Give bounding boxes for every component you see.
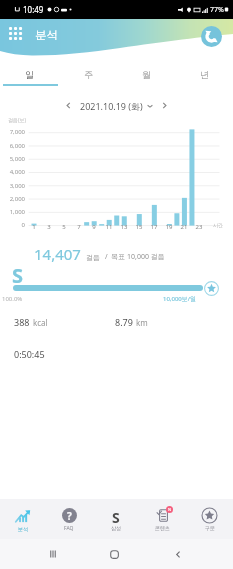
staticText: 걸음 xyxy=(86,253,100,262)
button[interactable]: 월 xyxy=(117,62,175,86)
staticText: km xyxy=(136,317,148,328)
staticText: 년 xyxy=(200,69,209,80)
button[interactable]: 일 xyxy=(0,62,59,86)
button[interactable]: Recents xyxy=(43,547,63,561)
staticText: 구문 xyxy=(205,525,215,531)
staticText: 21 xyxy=(176,223,192,231)
staticText: 4,000 xyxy=(0,168,25,176)
staticText: 주 xyxy=(84,69,93,80)
button[interactable]: Goal badge xyxy=(204,281,219,296)
button[interactable]: Apps xyxy=(6,24,28,46)
staticText: 0:50:45 xyxy=(14,348,45,360)
staticText: 0 xyxy=(0,221,25,229)
staticText: 8.79 xyxy=(115,316,133,328)
staticText: 5 xyxy=(56,223,72,231)
staticText: 10,000보/일 xyxy=(163,295,197,303)
staticText: 걸음(보) xyxy=(8,117,27,124)
staticText: 1 xyxy=(26,223,42,231)
button[interactable]: Call xyxy=(201,26,222,47)
staticText: 시간 xyxy=(213,222,223,228)
staticText: 7,000 xyxy=(0,128,25,136)
staticText: 분석 xyxy=(18,526,28,532)
staticText: FAQ xyxy=(64,525,74,532)
staticText: 삼성 xyxy=(111,525,121,531)
staticText: 100.0% xyxy=(2,295,23,303)
staticText: 2021.10.19 (화) xyxy=(80,100,143,112)
button[interactable]: 분석 xyxy=(0,499,46,539)
staticText: 6,000 xyxy=(0,142,25,150)
button[interactable]: Previous day xyxy=(60,97,77,114)
button[interactable]: 2021.10.19 (화) xyxy=(80,100,153,112)
staticText: 14,407 xyxy=(34,244,81,264)
button[interactable]: 년 xyxy=(175,62,233,86)
staticText: ? xyxy=(67,509,72,523)
staticText: 15 xyxy=(131,223,147,231)
button[interactable]: Back xyxy=(168,547,188,561)
staticText: 5,000 xyxy=(0,155,25,163)
staticText: / 목표 10,000 걸음 xyxy=(105,252,165,262)
staticText: 77% xyxy=(210,5,224,15)
staticText: 3,000 xyxy=(0,182,25,190)
staticText: 일 xyxy=(25,69,34,80)
button[interactable]: 구문 xyxy=(186,499,233,539)
staticText: 3 xyxy=(41,223,57,231)
staticText: 388 xyxy=(14,316,30,328)
staticText: N xyxy=(168,507,172,512)
button[interactable]: Next day xyxy=(156,97,173,114)
staticText: 월 xyxy=(142,69,151,80)
staticText: 7 xyxy=(71,223,87,231)
button[interactable]: S xyxy=(92,499,139,539)
staticText: 17 xyxy=(146,223,162,231)
staticText: kcal xyxy=(33,317,48,328)
button[interactable] xyxy=(13,285,203,291)
staticText: 23 xyxy=(191,223,207,231)
button[interactable]: Home xyxy=(104,547,124,561)
staticText: 10:49 xyxy=(23,4,44,15)
staticText: 분석 xyxy=(35,28,58,42)
staticText: 13 xyxy=(116,223,132,231)
staticText: 19 xyxy=(161,223,177,231)
staticText: 콘텐츠 xyxy=(155,525,170,531)
staticText: 1,000 xyxy=(0,208,25,216)
staticText: 2,000 xyxy=(0,195,25,203)
staticText: S xyxy=(112,508,120,524)
button[interactable]: ? xyxy=(46,499,92,539)
staticText: S xyxy=(12,262,24,289)
staticText: 11 xyxy=(101,223,117,231)
staticText: 9 xyxy=(86,223,102,231)
button[interactable]: N xyxy=(139,499,186,539)
button[interactable]: 주 xyxy=(59,62,117,86)
